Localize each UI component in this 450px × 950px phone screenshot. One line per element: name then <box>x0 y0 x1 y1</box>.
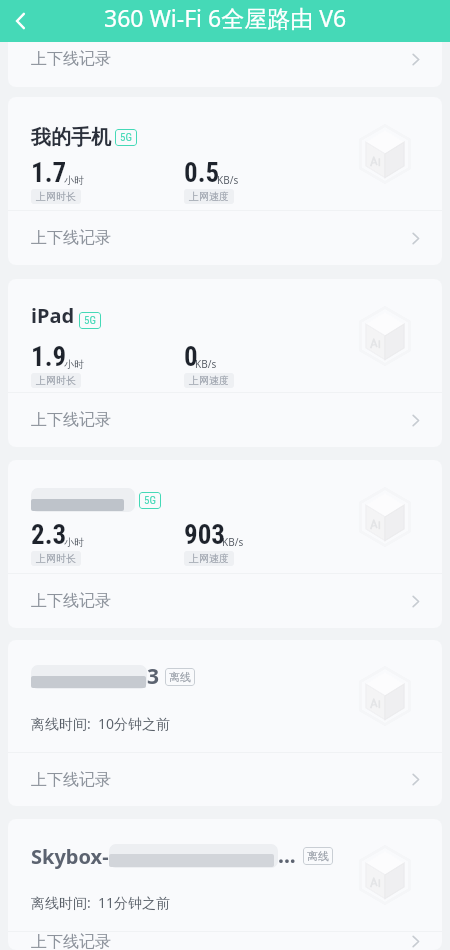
staticText: 离线时间: 10分钟之前 <box>31 714 171 733</box>
staticText: 上下线记录 <box>31 228 111 248</box>
button[interactable]: 3 <box>8 640 442 806</box>
staticText: 5G <box>144 494 156 507</box>
staticText: KB/s <box>217 173 239 187</box>
button[interactable]: 5G <box>8 460 442 628</box>
button[interactable]: iPad <box>8 279 442 447</box>
staticText: 上网时长 <box>36 190 76 203</box>
staticText: 3 <box>147 662 160 691</box>
staticText: 0.5 <box>184 157 220 189</box>
button[interactable]: Back <box>0 0 42 42</box>
staticText: 小时 <box>64 174 84 187</box>
button[interactable]: 上下线记录 <box>8 393 442 447</box>
staticText: 5G <box>120 131 132 144</box>
staticText: KB/s <box>195 357 217 371</box>
staticText: 上下线记录 <box>31 410 111 430</box>
staticText: 上网速度 <box>189 552 229 565</box>
staticText: 上网时长 <box>36 374 76 387</box>
button[interactable]: 我的手机 <box>8 97 442 265</box>
staticText: 上网时长 <box>36 552 76 565</box>
button[interactable]: Skybox- <box>8 819 442 950</box>
button[interactable]: 上下线记录 <box>8 753 442 806</box>
staticText: 上网速度 <box>189 374 229 387</box>
staticText: 小时 <box>64 358 84 371</box>
staticText: 上下线记录 <box>31 49 111 69</box>
staticText: 上网速度 <box>189 190 229 203</box>
staticText: 2.3 <box>31 519 67 551</box>
staticText: 离线 <box>307 849 329 863</box>
staticText: 903 <box>184 519 225 551</box>
staticText: 我的手机 <box>31 125 111 150</box>
staticText: 离线时间: 11分钟之前 <box>31 893 171 912</box>
staticText: 1.9 <box>31 341 67 373</box>
staticText: 离线 <box>169 670 191 684</box>
staticText: iPad <box>31 302 75 329</box>
staticText: 小时 <box>64 536 84 549</box>
button[interactable]: 上下线记录 <box>8 211 442 265</box>
staticText: 0 <box>184 341 198 373</box>
staticText: KB/s <box>222 535 244 549</box>
staticText: 5G <box>84 314 96 327</box>
staticText: 上下线记录 <box>31 932 111 950</box>
staticText: 1.7 <box>31 157 67 189</box>
button[interactable]: 上下线记录 <box>8 574 442 628</box>
staticText: ... <box>278 841 296 870</box>
button[interactable]: 上下线记录 <box>8 932 442 950</box>
button[interactable]: 上下线记录 <box>8 42 442 81</box>
staticText: 360 Wi-Fi 6全屋路由 V6 <box>104 2 347 33</box>
staticText: 上下线记录 <box>31 770 111 790</box>
staticText: Skybox- <box>31 843 109 870</box>
staticText: 上下线记录 <box>31 591 111 611</box>
